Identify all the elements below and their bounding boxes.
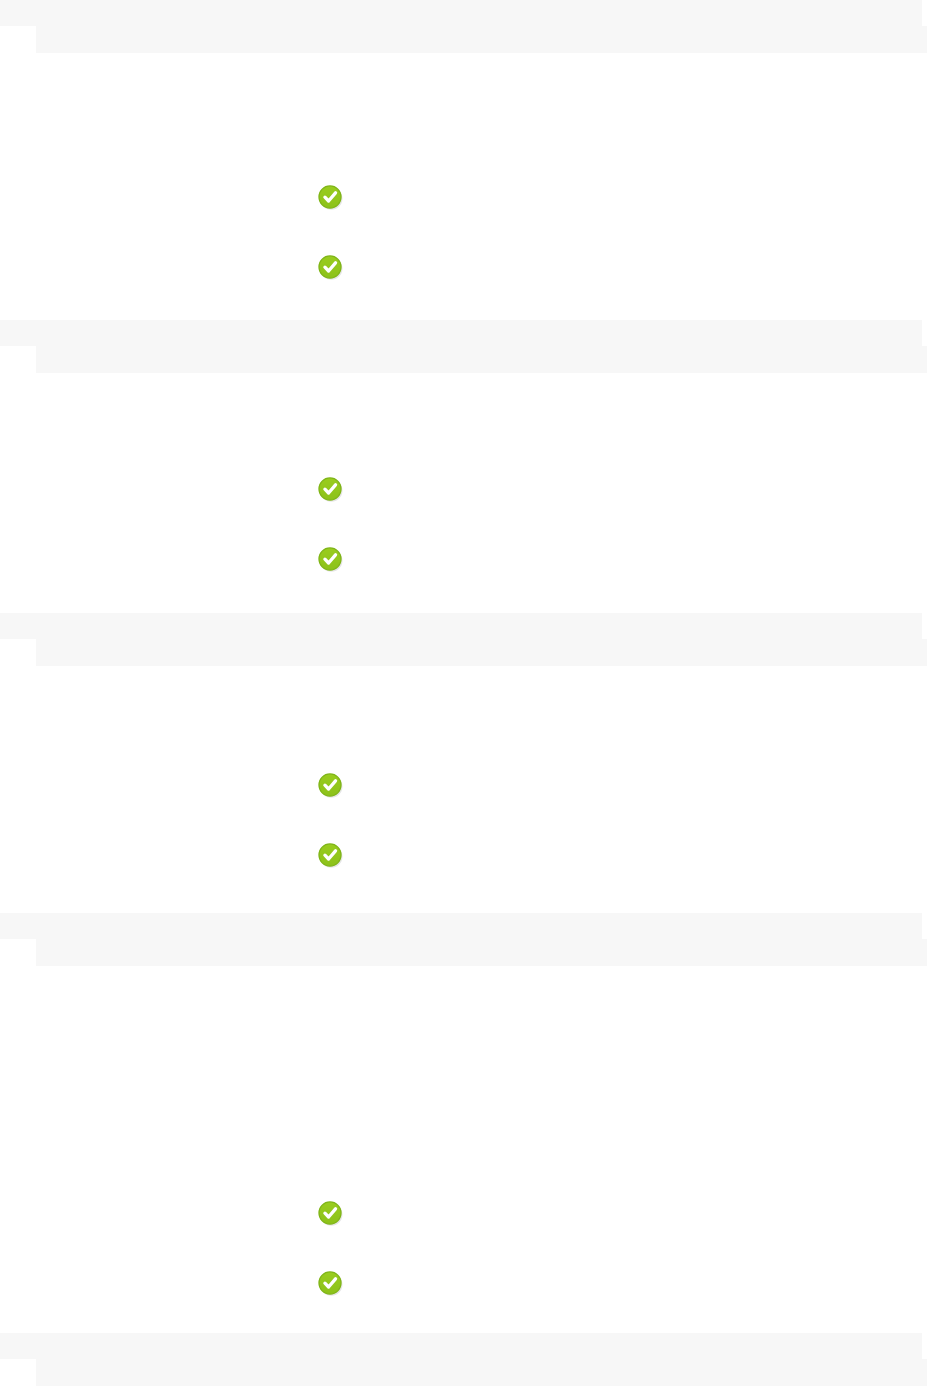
- button[interactable]: Completed: [318, 547, 342, 571]
- button[interactable]: Completed: [318, 185, 342, 209]
- button[interactable]: Completed: [318, 1201, 342, 1225]
- button[interactable]: Completed: [318, 773, 342, 797]
- button[interactable]: Completed: [318, 1271, 342, 1295]
- button[interactable]: Completed: [318, 255, 342, 279]
- button[interactable]: Completed: [318, 843, 342, 867]
- button[interactable]: Completed: [318, 477, 342, 501]
